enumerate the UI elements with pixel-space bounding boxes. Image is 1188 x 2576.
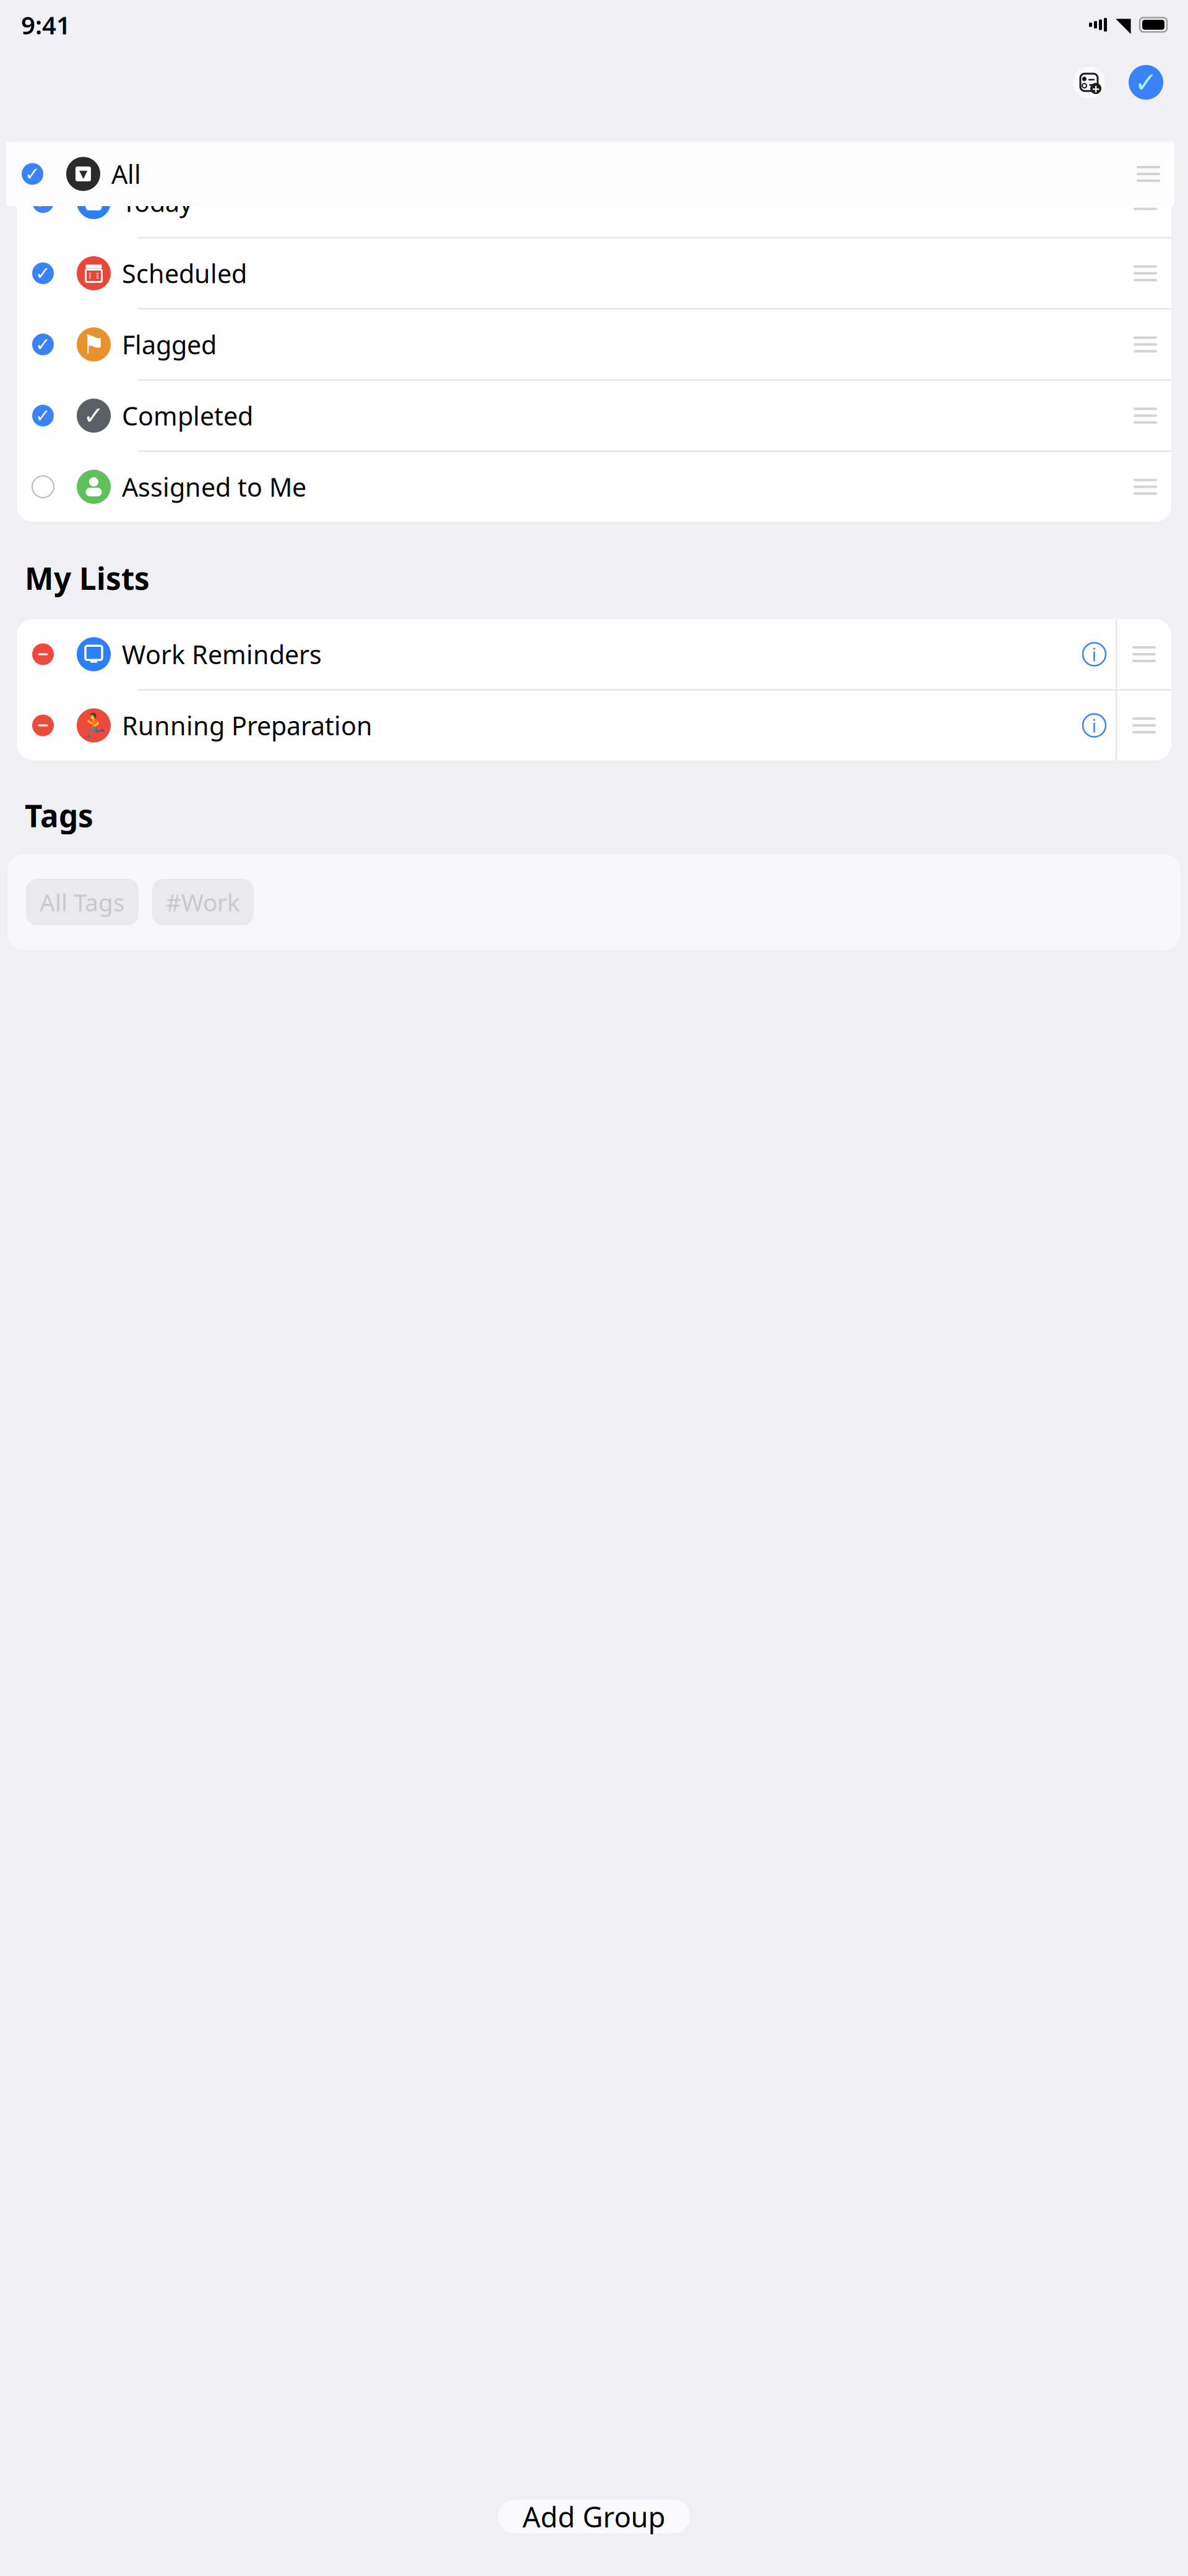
staticText: Flagged <box>122 327 217 361</box>
staticText: All <box>111 157 141 191</box>
staticText: ⚑ <box>82 330 105 359</box>
staticText: ✓ <box>35 405 51 426</box>
staticText: All Tags <box>40 886 125 918</box>
staticText: ◥ <box>1116 13 1131 36</box>
button[interactable]: Work Reminders info <box>1073 619 1116 689</box>
button[interactable]: 🏃 <box>60 690 1073 760</box>
button[interactable]: ✓ <box>17 381 1171 451</box>
staticText: Scheduled <box>122 256 247 290</box>
button[interactable]: Reorder Work Reminders <box>1117 619 1171 689</box>
staticText: ▼ <box>79 168 87 180</box>
staticText: ⋮⋮ <box>86 272 101 280</box>
button[interactable]: ✓ <box>17 309 1171 379</box>
button[interactable]: Add Group <box>498 2500 690 2533</box>
staticText: Assigned to Me <box>122 470 306 504</box>
staticText: ✓ <box>35 334 51 355</box>
staticText: ✓ <box>83 402 104 430</box>
button[interactable]: Delete Running Preparation <box>17 690 60 760</box>
button[interactable]: Delete Work Reminders <box>17 619 60 689</box>
button[interactable]: #Work <box>152 879 254 925</box>
staticText: 13 <box>88 195 100 209</box>
staticText: Today <box>122 185 192 219</box>
staticText: 9:41 <box>21 8 71 41</box>
staticText: Running Preparation <box>122 708 372 742</box>
staticText: ✓ <box>1134 66 1158 98</box>
staticText: + <box>1092 80 1100 97</box>
button[interactable]: Assigned to Me <box>17 452 1171 522</box>
button[interactable]: Add List <box>1073 66 1105 98</box>
staticText: ✓ <box>25 164 40 184</box>
button[interactable]: Reorder Running Preparation <box>1117 690 1171 760</box>
staticText: Tags <box>25 795 93 836</box>
button[interactable]: Work Reminders <box>60 619 1073 689</box>
staticText: Work Reminders <box>122 637 322 671</box>
staticText: 🏃 <box>80 712 108 739</box>
staticText: i <box>1092 642 1097 666</box>
staticText: ✓ <box>35 263 51 284</box>
staticText: Completed <box>122 399 253 433</box>
staticText: My Lists <box>25 558 150 598</box>
button[interactable]: ✓ <box>17 167 1171 237</box>
button[interactable]: ✓ <box>17 238 1171 308</box>
staticText: i <box>1092 713 1097 737</box>
button[interactable]: Done <box>1129 65 1163 100</box>
button[interactable]: Running Preparation info <box>1073 690 1116 760</box>
button[interactable]: All Tags <box>26 879 139 925</box>
staticText: Add Group <box>523 2498 665 2535</box>
staticText: #Work <box>166 886 240 918</box>
staticText: ✓ <box>35 192 51 212</box>
